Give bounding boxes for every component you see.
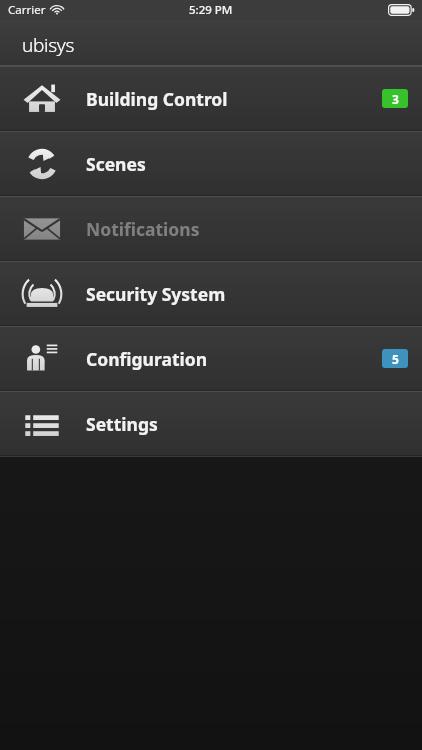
button[interactable]: Notifications: [0, 196, 422, 261]
staticText: Security System: [86, 282, 226, 306]
button[interactable]: Scenes: [0, 131, 422, 196]
staticText: Scenes: [86, 152, 146, 176]
button[interactable]: Settings: [0, 391, 422, 456]
staticText: 5: [392, 351, 399, 367]
staticText: Carrier: [8, 2, 46, 18]
staticText: 5:29 PM: [189, 2, 233, 18]
staticText: 3: [392, 91, 399, 107]
button[interactable]: Configuration: [0, 326, 422, 391]
staticText: Building Control: [86, 87, 228, 111]
button[interactable]: Security System: [0, 261, 422, 326]
button[interactable]: Building Control: [0, 66, 422, 131]
staticText: ubisys: [22, 32, 74, 58]
staticText: Configuration: [86, 347, 208, 371]
staticText: Settings: [86, 412, 158, 436]
staticText: Notifications: [86, 217, 200, 241]
